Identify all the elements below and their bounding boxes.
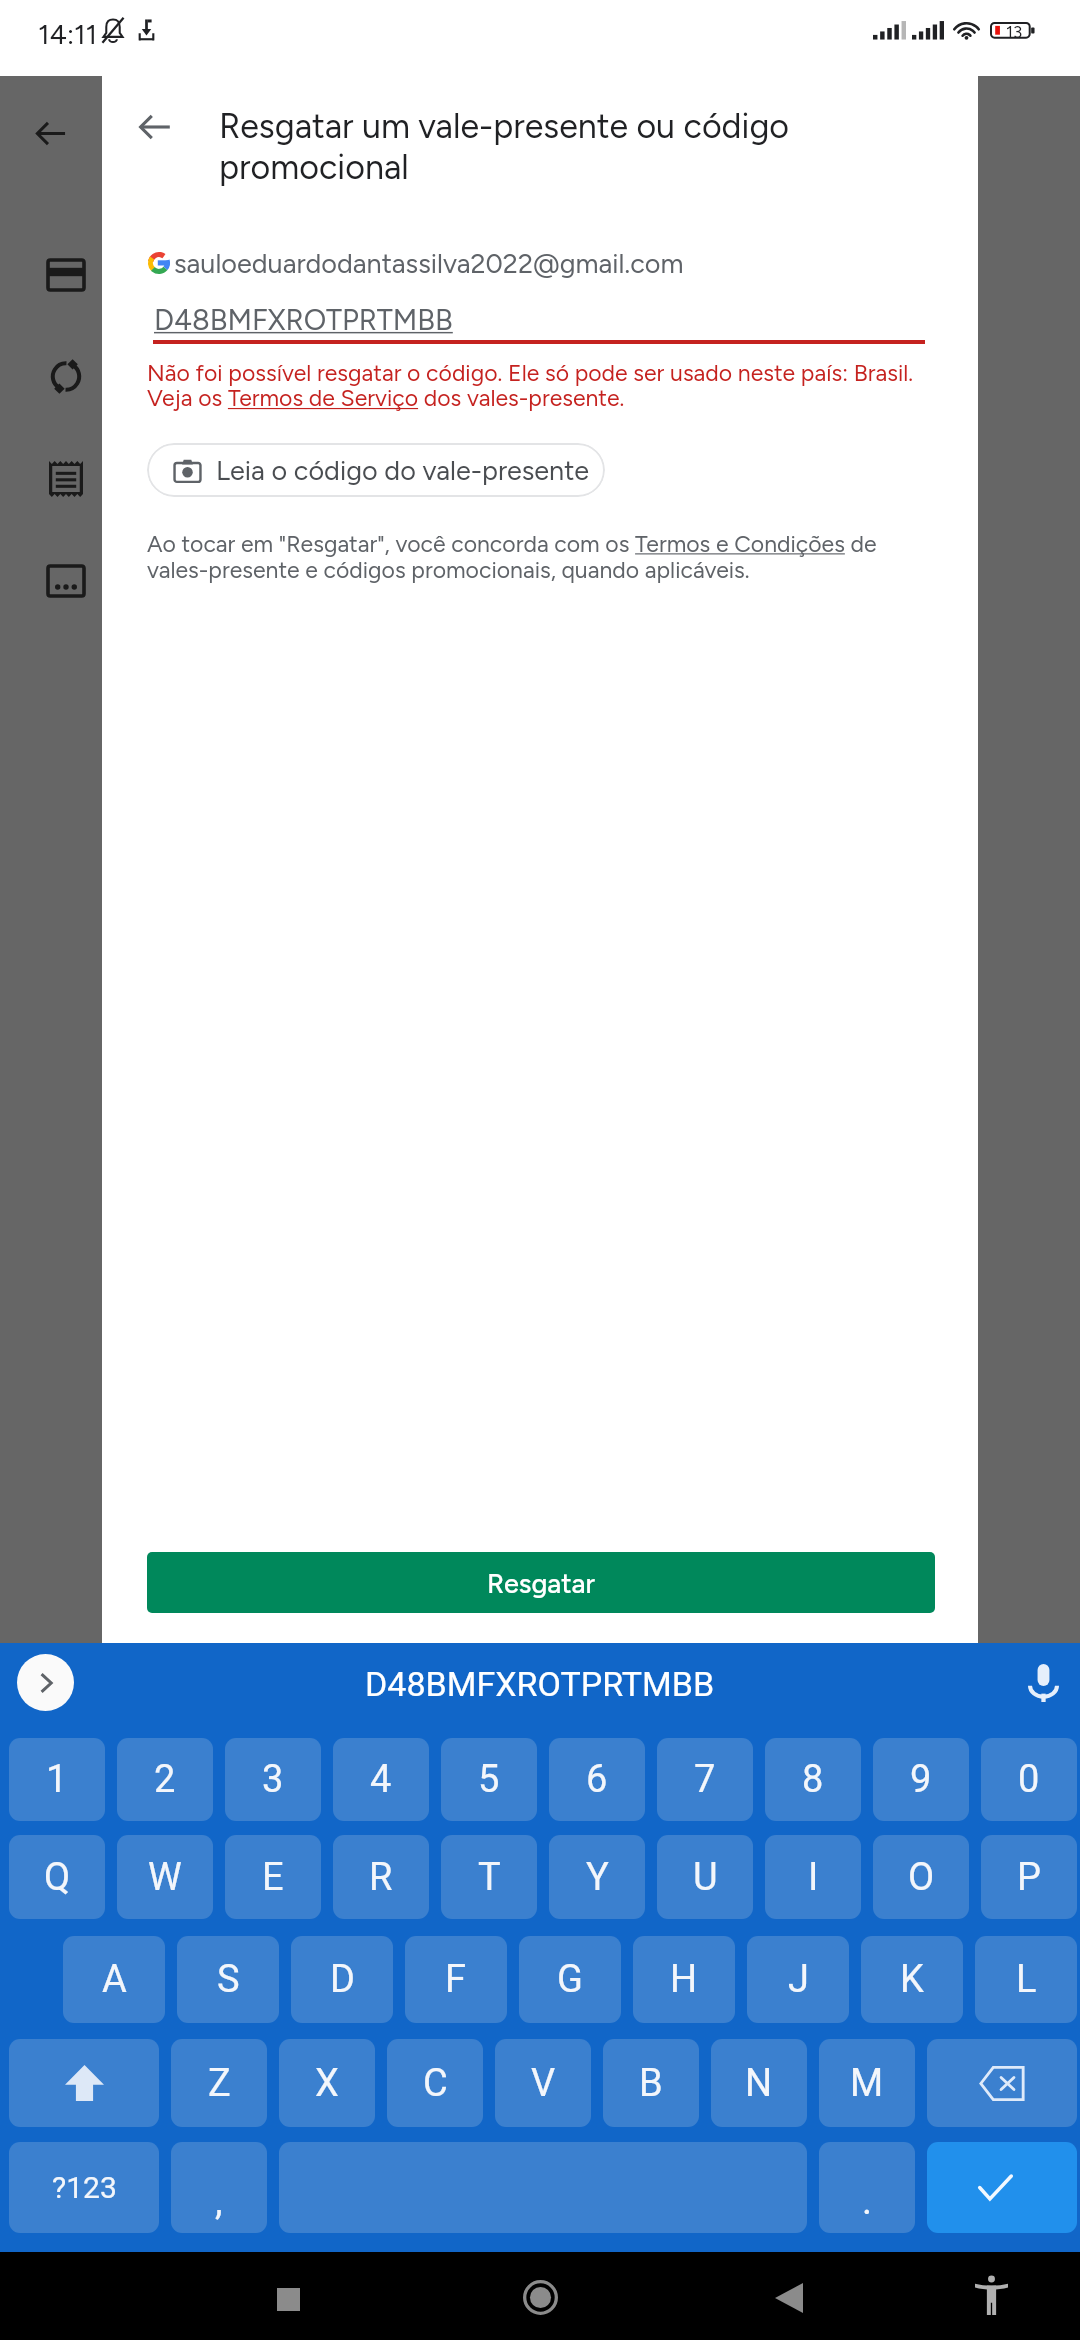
button[interactable]: D — [291, 1936, 393, 2023]
button[interactable]: V — [495, 2039, 591, 2127]
button[interactable]: H — [633, 1936, 735, 2023]
staticText: Resgatar — [487, 1567, 595, 1599]
staticText: . — [862, 2179, 873, 2224]
staticText: Não foi possível resgatar o código. Ele … — [147, 359, 937, 412]
button[interactable]: I — [765, 1835, 861, 1919]
staticText: J — [788, 1957, 809, 2002]
staticText: 5 — [478, 1757, 500, 1802]
staticText: M — [850, 2061, 884, 2106]
button[interactable]: 5 — [441, 1738, 537, 1821]
staticText: K — [900, 1957, 924, 2002]
button[interactable]: R — [333, 1835, 429, 1919]
button[interactable]: L — [975, 1936, 1077, 2023]
button[interactable]: E — [225, 1835, 321, 1919]
staticText: Z — [208, 2061, 231, 2106]
button[interactable]: X — [279, 2039, 375, 2127]
button[interactable]: S — [177, 1936, 279, 2023]
staticText: D48BMFXROTPRTMBB — [365, 1664, 715, 1704]
staticText: U — [693, 1855, 718, 1900]
staticText: 7 — [694, 1757, 716, 1802]
button[interactable]: 7 — [657, 1738, 753, 1821]
button[interactable]: 1 — [9, 1738, 105, 1821]
staticText: Q — [44, 1855, 71, 1900]
button[interactable]: U — [657, 1835, 753, 1919]
button[interactable] — [9, 2039, 159, 2127]
staticText: A — [102, 1957, 127, 2002]
button[interactable]: M — [819, 2039, 915, 2127]
staticText: P — [1017, 1855, 1041, 1900]
staticText: 0 — [1018, 1757, 1040, 1802]
button[interactable]: O — [873, 1835, 969, 1919]
button[interactable]: Início — [506, 2263, 574, 2331]
staticText: L — [1016, 1957, 1037, 2002]
staticText: 9 — [910, 1757, 932, 1802]
button[interactable]: G — [519, 1936, 621, 2023]
button[interactable] — [927, 2142, 1077, 2233]
staticText: D — [330, 1957, 355, 2002]
button[interactable]: 8 — [765, 1738, 861, 1821]
staticText: O — [908, 1855, 935, 1900]
staticText: 2 — [154, 1757, 176, 1802]
button[interactable]: P — [981, 1835, 1077, 1919]
button[interactable]: T — [441, 1835, 537, 1919]
button[interactable]: 2 — [117, 1738, 213, 1821]
staticText: R — [369, 1855, 393, 1900]
button[interactable]: W — [117, 1835, 213, 1919]
staticText: 14:11 — [38, 17, 98, 51]
staticText: G — [557, 1957, 583, 2002]
staticText: ?123 — [52, 2170, 117, 2205]
button[interactable] — [927, 2039, 1077, 2127]
staticText: 13 — [1006, 22, 1023, 42]
staticText: S — [217, 1957, 240, 2002]
staticText: Ao tocar em "Resgatar", você concorda co… — [147, 530, 912, 583]
staticText: sauloeduardodantassilva2022@gmail.com — [174, 247, 684, 279]
button[interactable]: Y — [549, 1835, 645, 1919]
button[interactable]: Leia o código do vale-presente — [147, 443, 605, 497]
staticText: 4 — [370, 1757, 392, 1802]
button[interactable]: 9 — [873, 1738, 969, 1821]
staticText: T — [478, 1855, 501, 1900]
staticText: 1 — [46, 1757, 68, 1802]
staticText: X — [315, 2061, 339, 2106]
button[interactable]: , — [171, 2142, 267, 2233]
button[interactable]: Z — [171, 2039, 267, 2127]
button[interactable]: Q — [9, 1835, 105, 1919]
staticText: B — [639, 2061, 663, 2106]
button[interactable]: Entrada por voz — [1013, 1653, 1073, 1713]
button[interactable]: 3 — [225, 1738, 321, 1821]
button[interactable]: Recentes — [254, 2265, 322, 2333]
button[interactable]: A — [63, 1936, 165, 2023]
staticText: 3 — [262, 1757, 284, 1802]
staticText: W — [148, 1855, 182, 1900]
staticText: D48BMFXROTPRTMBB — [154, 302, 453, 337]
button[interactable]: Voltar — [111, 83, 199, 171]
staticText: V — [531, 2061, 556, 2106]
button[interactable]: C — [387, 2039, 483, 2127]
staticText: 8 — [802, 1757, 824, 1802]
button[interactable]: F — [405, 1936, 507, 2023]
staticText: Y — [586, 1855, 609, 1900]
button[interactable]: Voltar — [755, 2264, 823, 2332]
staticText: N — [745, 2061, 773, 2106]
button[interactable]: Resgatar — [147, 1552, 935, 1613]
staticText: 6 — [586, 1757, 608, 1802]
staticText: F — [445, 1957, 467, 2002]
staticText: I — [808, 1855, 819, 1900]
staticText: C — [423, 2061, 448, 2106]
button[interactable]: Mostrar mais sugestões — [17, 1654, 74, 1711]
button[interactable]: N — [711, 2039, 807, 2127]
staticText: Leia o código do vale-presente — [216, 454, 590, 486]
button[interactable]: J — [747, 1936, 849, 2023]
button[interactable]: K — [861, 1936, 963, 2023]
staticText: , — [215, 2179, 223, 2224]
button[interactable]: . — [819, 2142, 915, 2233]
staticText: E — [262, 1855, 284, 1900]
button[interactable]: 4 — [333, 1738, 429, 1821]
button[interactable]: 6 — [549, 1738, 645, 1821]
button[interactable]: B — [603, 2039, 699, 2127]
staticText: Resgatar um vale-presente ou código prom… — [219, 106, 839, 188]
button[interactable]: Acessibilidade — [957, 2260, 1025, 2328]
button[interactable]: ?123 — [9, 2142, 159, 2233]
button[interactable]: 0 — [981, 1738, 1077, 1821]
